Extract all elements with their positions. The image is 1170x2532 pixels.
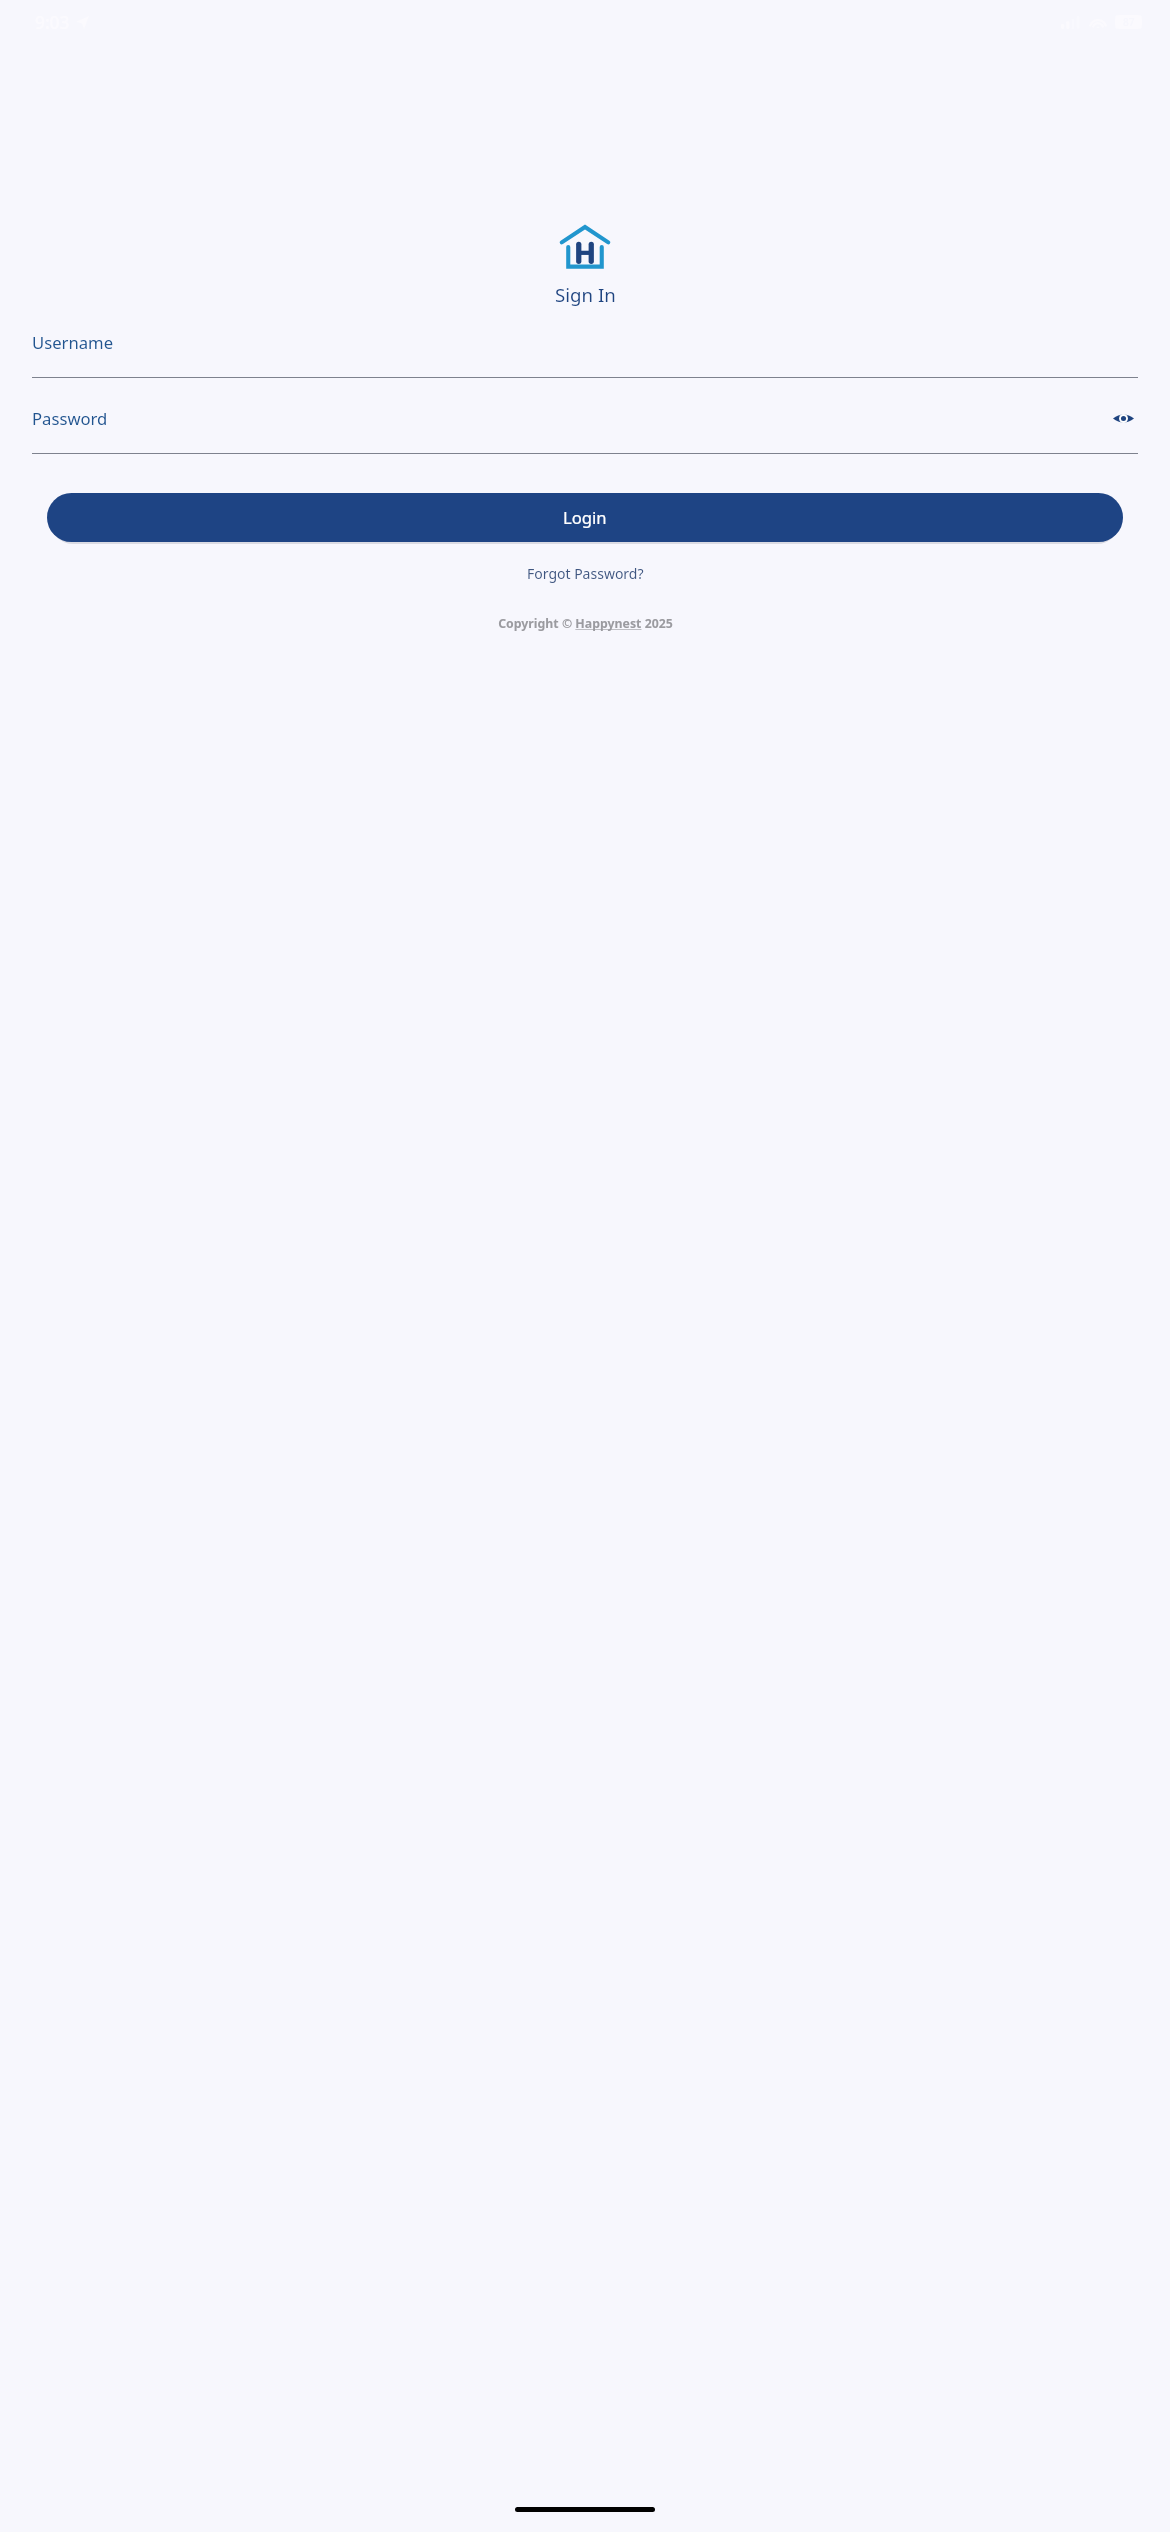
button[interactable]: Username bbox=[32, 326, 1138, 378]
staticText: Username bbox=[32, 331, 114, 354]
button[interactable]: Password bbox=[32, 402, 1138, 454]
button[interactable]: Copyright © Happynest 2025 bbox=[493, 612, 678, 635]
button[interactable]: Show password bbox=[1109, 404, 1138, 433]
staticText: Sign In bbox=[555, 282, 616, 307]
staticText: Login bbox=[563, 506, 607, 529]
staticText: Password bbox=[32, 407, 108, 430]
button[interactable]: Forgot Password? bbox=[519, 561, 652, 586]
staticText: Copyright © Happynest 2025 bbox=[498, 615, 673, 632]
button[interactable]: Login bbox=[47, 493, 1123, 542]
staticText: Forgot Password? bbox=[527, 564, 644, 583]
